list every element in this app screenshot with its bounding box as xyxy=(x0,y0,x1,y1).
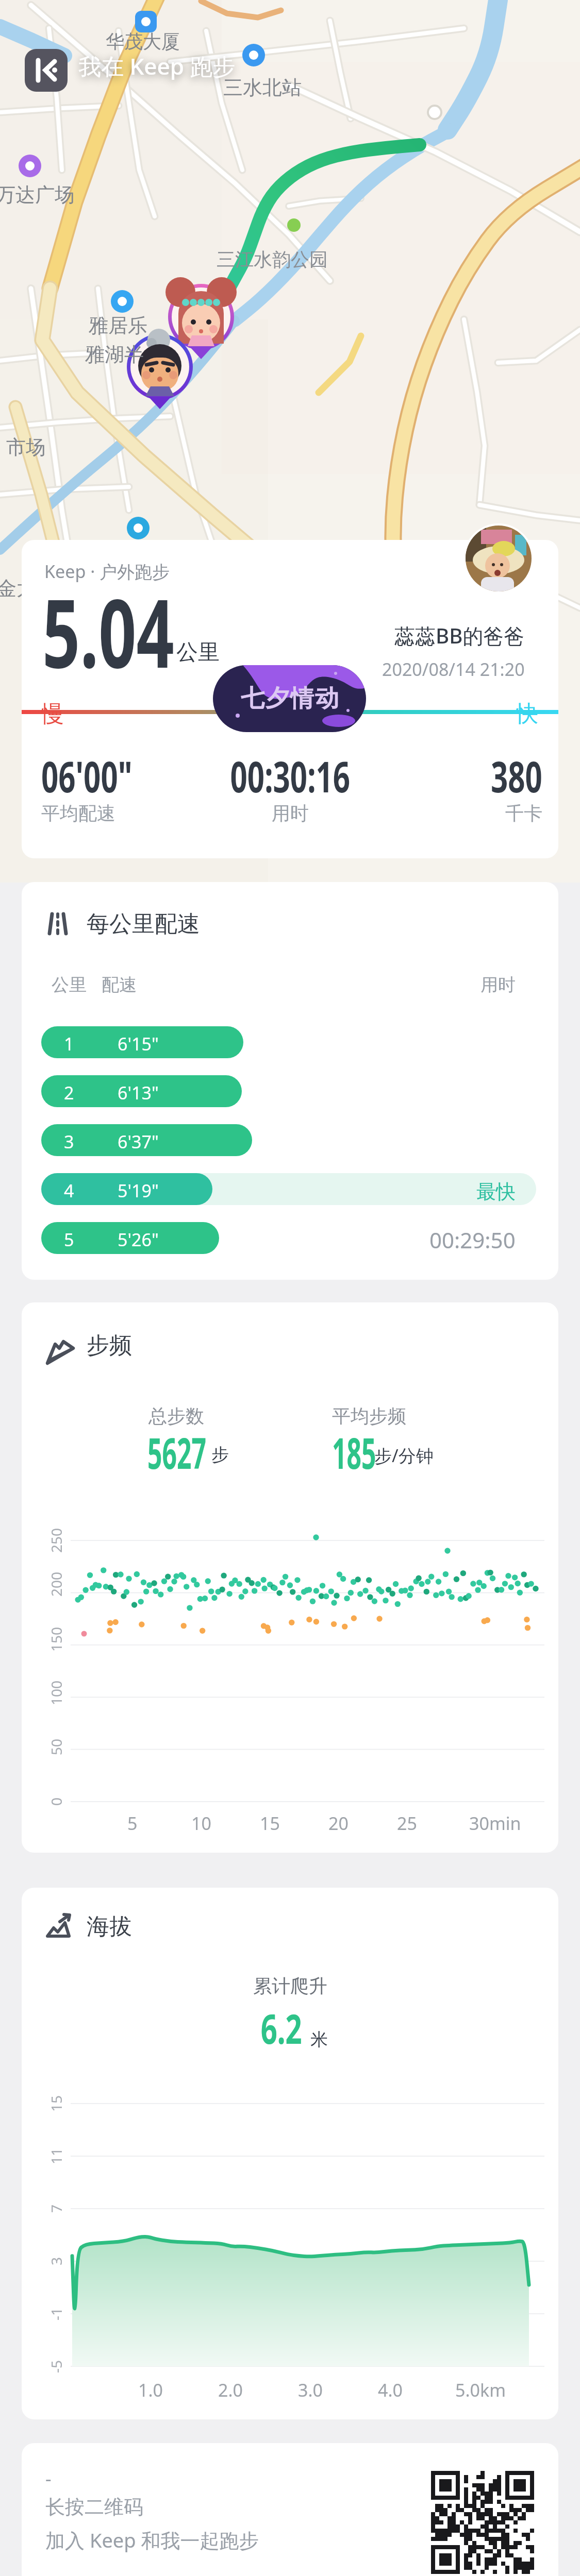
staticText: 2.0 xyxy=(218,2378,243,2402)
staticText: 海拔 xyxy=(87,1912,132,1941)
button[interactable]: 2 xyxy=(41,1075,242,1107)
staticText: 公里 xyxy=(52,974,87,996)
staticText: 万达广场 xyxy=(0,182,74,207)
staticText: 最快 xyxy=(476,1179,516,1204)
staticText: 3 xyxy=(46,2257,63,2265)
staticText: 市场 xyxy=(6,435,45,460)
staticText: 金太 xyxy=(0,576,36,601)
staticText: 00:30:16 xyxy=(230,747,350,805)
staticText: 5 xyxy=(64,1228,74,1251)
staticText: 华茂大厦 xyxy=(106,30,180,53)
staticText: 1.0 xyxy=(138,2378,163,2402)
staticText: 5'19" xyxy=(118,1179,159,1202)
staticText: 5.04 xyxy=(42,567,174,695)
staticText: 11 xyxy=(46,2147,63,2164)
staticText: 三水北站 xyxy=(223,75,302,100)
staticText: 30min xyxy=(469,1811,521,1835)
staticText: 步频 xyxy=(87,1331,132,1360)
staticText: 蕊蕊BB的爸爸 xyxy=(394,621,525,650)
staticText: 步 xyxy=(211,1444,229,1466)
staticText: 200 xyxy=(46,1571,63,1597)
button[interactable] xyxy=(431,2471,534,2574)
staticText: 快 xyxy=(516,700,538,728)
staticText: 15 xyxy=(46,2095,63,2112)
button[interactable]: 3 xyxy=(41,1124,252,1156)
staticText: 4.0 xyxy=(378,2378,403,2402)
staticText: 6'13" xyxy=(118,1081,159,1105)
staticText: 公里 xyxy=(176,639,220,666)
staticText: 长按二维码 xyxy=(45,2495,143,2519)
staticText: 5.0km xyxy=(455,2378,506,2402)
staticText: 累计爬升 xyxy=(253,1974,327,1997)
staticText: 50 xyxy=(46,1738,63,1755)
staticText: 3 xyxy=(64,1130,74,1154)
staticText: 250 xyxy=(46,1528,63,1553)
staticText: 三江水韵公园 xyxy=(217,248,328,271)
staticText: 7 xyxy=(46,2204,63,2213)
button[interactable]: 1 xyxy=(41,1026,243,1058)
staticText: 10 xyxy=(191,1811,211,1835)
staticText: 用时 xyxy=(272,802,309,825)
staticText: 加入 Keep 和我一起跑步 xyxy=(45,2527,259,2553)
staticText: 慢 xyxy=(41,700,64,728)
staticText: 配速 xyxy=(102,974,137,996)
staticText: 我在 Keep 跑步 xyxy=(78,50,236,81)
staticText: 1 xyxy=(64,1032,74,1056)
button[interactable]: 七夕情动 xyxy=(213,665,366,732)
staticText: 6'15" xyxy=(118,1032,159,1056)
staticText: 380 xyxy=(491,747,542,805)
staticText: 0 xyxy=(46,1797,63,1806)
staticText: 步/分钟 xyxy=(374,1444,434,1467)
staticText: 4 xyxy=(64,1179,74,1202)
staticText: 185 xyxy=(332,1423,376,1481)
staticText: -1 xyxy=(46,2307,63,2320)
staticText: 6'37" xyxy=(118,1130,159,1154)
staticText: 150 xyxy=(46,1626,63,1652)
staticText: -5 xyxy=(46,2360,63,2373)
staticText: 06'00" xyxy=(41,747,132,805)
staticText: 七夕情动 xyxy=(240,684,339,714)
staticText: 5627 xyxy=(147,1423,206,1481)
button[interactable] xyxy=(25,49,68,92)
button[interactable]: 5 xyxy=(41,1222,219,1254)
staticText: 千卡 xyxy=(505,802,542,825)
staticText: 15 xyxy=(260,1811,280,1835)
staticText: 6.2 xyxy=(261,2001,302,2056)
button[interactable]: 4 xyxy=(41,1173,212,1205)
staticText: 平均步频 xyxy=(332,1404,406,1428)
staticText: - xyxy=(45,2466,52,2491)
staticText: 3.0 xyxy=(298,2378,323,2402)
staticText: 20 xyxy=(328,1811,349,1835)
staticText: 100 xyxy=(46,1680,63,1705)
staticText: 雅湖半 xyxy=(85,342,144,367)
staticText: 2020/08/14 21:20 xyxy=(382,657,525,681)
staticText: 总步数 xyxy=(148,1404,204,1428)
staticText: 5 xyxy=(127,1811,138,1835)
staticText: 雅居乐 xyxy=(89,313,147,338)
staticText: 00:29:50 xyxy=(429,1225,516,1255)
staticText: 用时 xyxy=(480,974,516,996)
staticText: 25 xyxy=(397,1811,417,1835)
staticText: 5'26" xyxy=(118,1228,159,1251)
staticText: 平均配速 xyxy=(41,802,115,825)
staticText: 米 xyxy=(310,2028,328,2050)
staticText: Keep · 户外跑步 xyxy=(44,560,170,583)
staticText: 每公里配速 xyxy=(87,910,200,938)
staticText: 2 xyxy=(64,1081,74,1105)
